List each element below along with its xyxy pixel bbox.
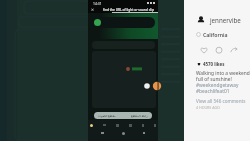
button[interactable]: California xyxy=(196,31,228,38)
staticText: #weekendgetaway xyxy=(196,82,239,89)
button[interactable]: ✕ xyxy=(88,6,158,13)
button[interactable]: Like xyxy=(199,45,209,55)
staticText: مقطع الصوت xyxy=(98,114,116,118)
staticText: ✕ xyxy=(91,8,95,12)
button[interactable]: مقطع الصوت xyxy=(94,112,152,119)
button[interactable]: View all 546 comments xyxy=(196,98,246,104)
button[interactable]: Share xyxy=(229,45,239,55)
button[interactable]: Account xyxy=(90,124,93,127)
staticText: California xyxy=(203,31,228,38)
button[interactable] xyxy=(92,17,155,28)
button[interactable]: jennervibe xyxy=(197,16,241,24)
staticText: 4 HOURS AGO xyxy=(196,105,220,110)
staticText: find the URL of light or sound clip xyxy=(103,8,154,12)
staticText: 14:31 xyxy=(93,1,102,6)
staticText: jennervibe xyxy=(210,16,241,24)
staticText: full of sunshine! xyxy=(196,76,232,83)
button[interactable]: Comment xyxy=(214,45,224,55)
staticText: Walking into a weekend xyxy=(196,70,250,77)
staticText: رابط المقطع xyxy=(131,114,148,118)
staticText: #beachlifeat01 xyxy=(196,88,230,95)
button[interactable]: Home xyxy=(122,132,125,135)
staticText: 4570 likes xyxy=(203,61,225,67)
